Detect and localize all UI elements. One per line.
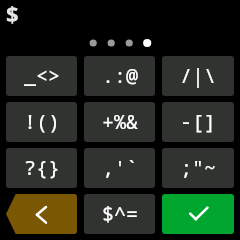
staticText: $^= bbox=[102, 200, 138, 227]
staticText: +%& bbox=[102, 108, 138, 135]
staticText: -[] bbox=[180, 108, 216, 135]
button[interactable]: _<> bbox=[6, 56, 77, 96]
button[interactable]: ,'` bbox=[84, 148, 155, 188]
button[interactable]: +%& bbox=[84, 102, 155, 142]
button[interactable]: $^= bbox=[84, 194, 155, 234]
staticText: ?{} bbox=[24, 154, 60, 181]
staticText: /|\ bbox=[180, 62, 216, 89]
staticText: ;"~ bbox=[180, 154, 216, 181]
button[interactable]: ;"~ bbox=[162, 148, 234, 188]
button[interactable]: Symbols page bbox=[0, 0, 26, 26]
button[interactable]: /|\ bbox=[162, 56, 234, 96]
staticText: _<> bbox=[24, 62, 60, 89]
button[interactable]: .:@ bbox=[84, 56, 155, 96]
staticText: ,'` bbox=[102, 154, 138, 181]
button[interactable]: ?{} bbox=[6, 148, 77, 188]
staticText: .:@ bbox=[102, 62, 138, 89]
button[interactable]: !() bbox=[6, 102, 77, 142]
button[interactable]: Backspace bbox=[6, 194, 77, 234]
button[interactable]: -[] bbox=[162, 102, 234, 142]
button[interactable]: Done bbox=[162, 194, 234, 234]
staticText: !() bbox=[24, 108, 60, 135]
staticText: $ bbox=[6, 0, 19, 24]
